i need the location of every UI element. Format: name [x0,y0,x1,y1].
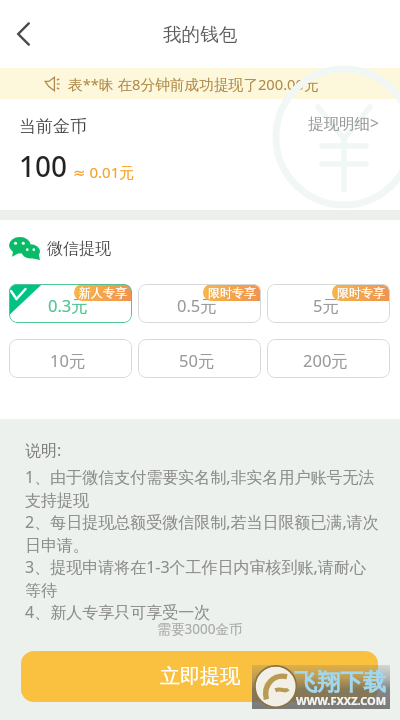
button[interactable]: 200元 [267,339,390,378]
button[interactable]: 0.3元 [9,284,132,323]
staticText: 限时专享 [208,285,256,300]
staticText: WWW.FXXZ.COM [296,693,387,708]
staticText: 5元 [313,294,339,317]
staticText: 表**昧 在8分钟前成功提现了200.00元 [68,74,319,94]
staticText: 微信提现 [47,239,111,259]
staticText: 需要3000金币 [0,620,400,638]
staticText: 4、新人专享只可享受一次 [25,601,211,623]
staticText: 3、提现申请将在1-3个工作日内审核到账,请耐心等待 [25,556,380,601]
button[interactable]: 10元 [9,339,132,378]
staticText: 限时专享 [337,285,385,300]
staticText: 说明: [25,439,62,461]
staticText: 我的钱包 [163,23,238,46]
staticText: 飞翔下载 [294,668,386,697]
staticText: 10元 [50,349,86,372]
staticText: 0.3元 [48,294,88,317]
button[interactable]: 5元 [267,284,390,323]
staticText: 2、每日提现总额受微信限制,若当日限额已满,请次日申请。 [25,511,380,556]
staticText: 当前金币 [19,116,87,137]
staticText: 100 [19,147,68,185]
staticText: 1、由于微信支付需要实名制,非实名用户账号无法支持提现 [25,466,380,511]
staticText: 立即提现 [160,664,240,689]
staticText: 50元 [179,349,215,372]
button[interactable]: 提现明细> [306,110,381,135]
staticText: ≈ 0.01元 [73,162,135,182]
button[interactable]: Back [2,12,46,56]
staticText: 提现明细> [308,112,379,133]
button[interactable]: 0.5元 [138,284,261,323]
button[interactable]: 50元 [138,339,261,378]
staticText: 新人专享 [79,285,127,300]
button[interactable]: 立即提现 [21,651,378,702]
staticText: 0.5元 [177,294,217,317]
staticText: 200元 [303,349,348,372]
